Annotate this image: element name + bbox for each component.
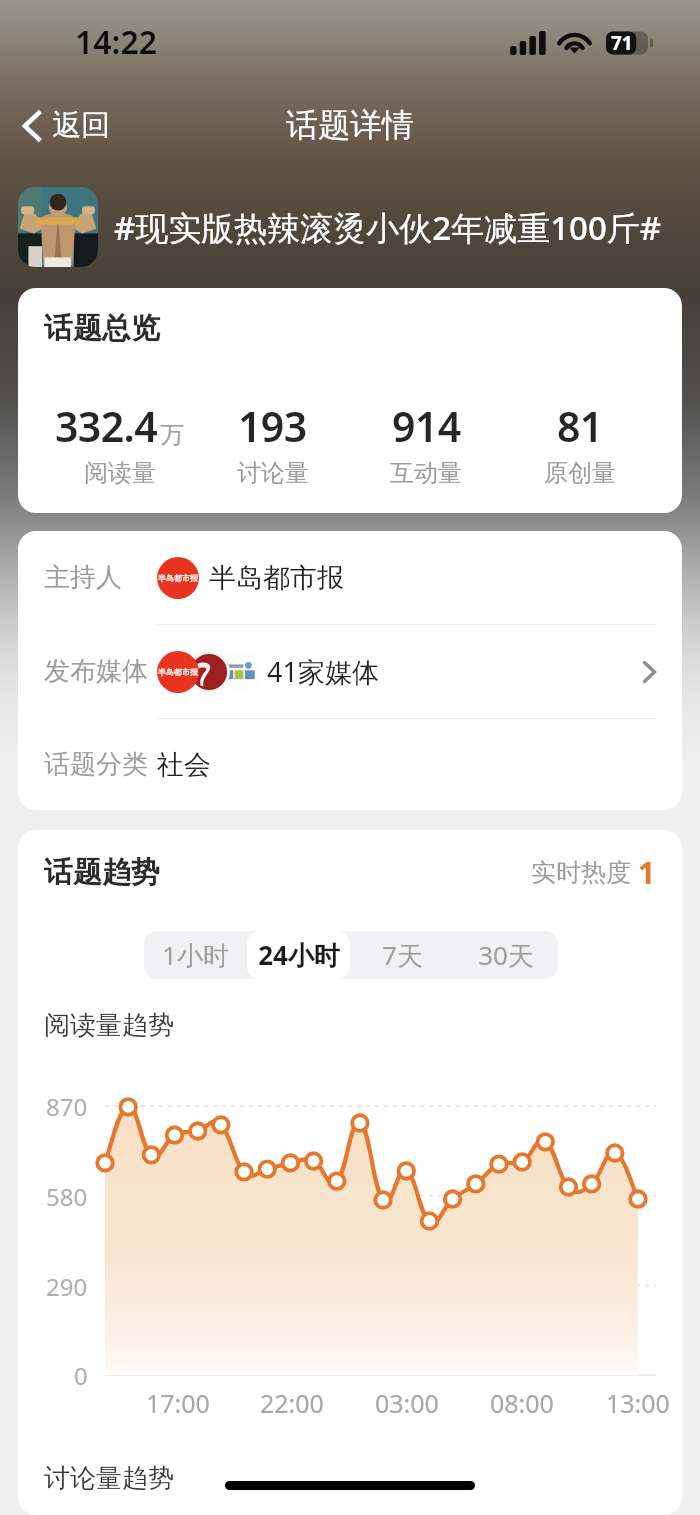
button[interactable]: 24小时	[247, 931, 350, 979]
staticText: 万	[160, 420, 184, 450]
staticText: 13:00	[606, 1386, 670, 1420]
staticText: 半岛都市报	[158, 667, 198, 677]
staticText: 社会	[157, 748, 211, 782]
staticText: 1小时	[162, 937, 229, 973]
staticText: 30天	[478, 937, 534, 973]
staticText: 阅读量	[84, 458, 156, 488]
staticText: 41家媒体	[267, 653, 379, 690]
staticText: 原创量	[544, 458, 616, 488]
staticText: 81	[557, 398, 603, 454]
staticText: 22:00	[260, 1386, 324, 1420]
button[interactable]: 7天	[350, 931, 454, 979]
staticText: 332.4	[55, 398, 158, 454]
button[interactable]: 主持人	[18, 531, 682, 624]
staticText: 话题分类	[44, 748, 148, 781]
staticText: 返回	[52, 107, 110, 144]
staticText: 阅读量趋势	[44, 1009, 174, 1042]
button[interactable]: 1小时	[144, 931, 247, 979]
staticText: 实时热度	[531, 857, 631, 888]
staticText: 580	[46, 1180, 88, 1212]
button[interactable]: 发布媒体	[18, 625, 682, 718]
staticText: 17:00	[146, 1386, 210, 1420]
staticText: 话题详情	[286, 105, 414, 145]
staticText: 话题总览	[44, 310, 160, 347]
staticText: 半岛都市报	[158, 573, 198, 583]
staticText: 870	[46, 1090, 88, 1122]
staticText: 0	[74, 1359, 88, 1391]
button[interactable]: 话题分类	[18, 719, 682, 810]
staticText: #现实版热辣滚烫小伙2年减重100斤#	[114, 205, 662, 250]
staticText: 话题趋势	[44, 854, 160, 891]
staticText: 71	[611, 30, 633, 56]
staticText: 03:00	[375, 1386, 439, 1420]
staticText: 193	[238, 398, 307, 454]
staticText: 主持人	[44, 561, 122, 594]
staticText: 290	[46, 1270, 88, 1302]
staticText: 讨论量趋势	[44, 1462, 174, 1495]
staticText: 14:22	[75, 20, 158, 64]
staticText: 讨论量	[237, 458, 309, 488]
button[interactable]: 30天	[454, 931, 558, 979]
staticText: 发布媒体	[44, 655, 148, 688]
staticText: 互动量	[390, 458, 462, 488]
button[interactable]: 返回	[16, 101, 114, 150]
staticText: 24小时	[258, 937, 340, 973]
staticText: 7天	[382, 937, 423, 973]
staticText: 914	[392, 398, 461, 454]
staticText: 半岛都市报	[209, 561, 344, 595]
other: More media	[643, 661, 656, 683]
staticText: 1	[638, 852, 656, 893]
staticText: 08:00	[490, 1386, 554, 1420]
